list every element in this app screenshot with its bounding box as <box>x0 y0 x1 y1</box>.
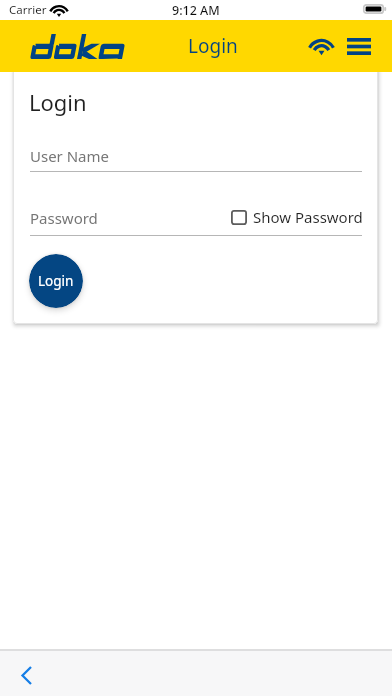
staticText: Show Password <box>253 207 363 227</box>
staticText: Password <box>30 208 98 228</box>
button[interactable]: Menu <box>347 31 377 61</box>
staticText: Login <box>38 272 74 290</box>
button[interactable]: Login <box>29 254 83 308</box>
button[interactable]: Show Password <box>231 207 363 227</box>
staticText: Carrier <box>9 2 47 18</box>
button[interactable]: Back <box>9 658 43 692</box>
staticText: Login <box>188 33 238 59</box>
staticText: User Name <box>30 146 110 166</box>
staticText: 9:12 AM <box>172 2 220 19</box>
staticText: Login <box>29 87 87 117</box>
button[interactable]: Wifi connection status <box>306 31 336 61</box>
